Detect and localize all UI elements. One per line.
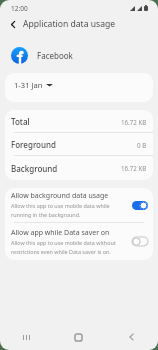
button[interactable]: Back <box>105 324 158 350</box>
staticText: Allow background data usage <box>11 191 109 201</box>
staticText: Foreground <box>11 139 56 150</box>
button[interactable]: Back <box>0 12 23 36</box>
button[interactable]: 1-31 Jan <box>5 73 153 102</box>
staticText: Allow this app to use mobile data withou… <box>11 239 116 256</box>
staticText: 0 B <box>137 141 147 149</box>
staticText: Facebook <box>37 50 73 61</box>
button[interactable]: Allow app while Data saver on <box>5 223 153 260</box>
button[interactable]: Recent apps <box>0 324 52 350</box>
button[interactable]: Total <box>5 110 153 133</box>
staticText: Total <box>11 116 30 127</box>
staticText: Background <box>11 163 58 174</box>
button[interactable]: Foreground <box>5 133 153 156</box>
staticText: 1-31 Jan <box>14 80 43 90</box>
button[interactable]: Toggle off <box>132 237 148 246</box>
staticText: 12:00 <box>11 4 28 13</box>
staticText: Allow this app to use mobile data while … <box>11 202 110 219</box>
staticText: Application data usage <box>23 18 116 30</box>
button[interactable]: Toggle on <box>132 201 148 210</box>
staticText: 16.72 KB <box>121 164 147 172</box>
staticText: Allow app while Data saver on <box>11 228 110 238</box>
button[interactable]: Home <box>52 324 105 350</box>
button[interactable]: Allow background data usage <box>5 188 153 222</box>
staticText: 16.72 KB <box>121 118 147 126</box>
button[interactable]: Background <box>5 156 153 180</box>
